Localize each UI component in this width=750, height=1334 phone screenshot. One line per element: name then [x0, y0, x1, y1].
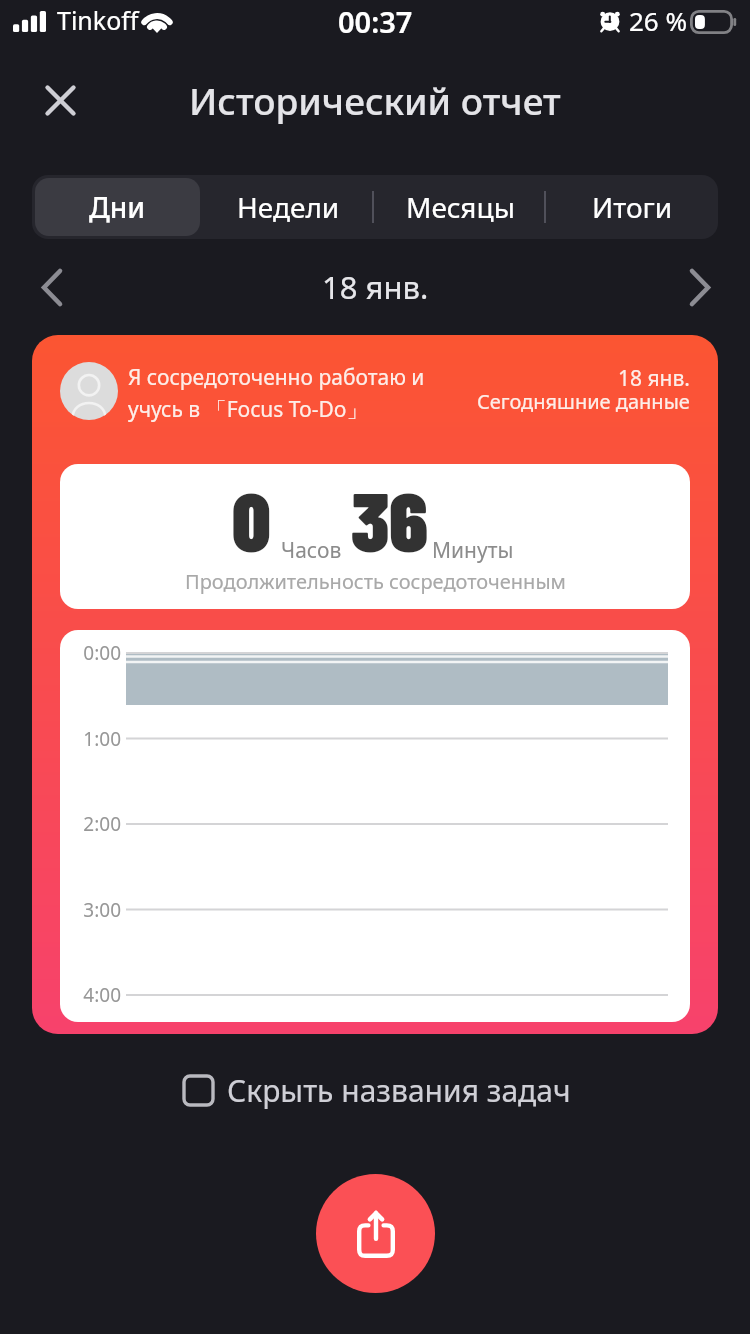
button[interactable]: Недели	[206, 178, 371, 236]
staticText: 3:00	[60, 897, 121, 923]
button[interactable]: Previous day	[20, 255, 84, 319]
staticText: 26 %	[629, 3, 688, 38]
staticText: 18 янв.	[322, 266, 429, 308]
staticText: 0	[232, 468, 271, 569]
staticText: Часов	[281, 536, 342, 565]
staticText: 36	[351, 468, 428, 569]
staticText: Скрыть названия задач	[227, 1070, 571, 1111]
button[interactable]: Итоги	[549, 178, 715, 236]
staticText: Tinkoff	[57, 3, 139, 37]
button[interactable]: Next day	[668, 255, 732, 319]
staticText: 00:37	[338, 2, 413, 41]
staticText: Дни	[89, 188, 146, 226]
button[interactable]: Скрыть названия задач	[182, 1070, 571, 1111]
staticText: Продолжительность сосредоточенным	[185, 568, 566, 595]
staticText: 2:00	[60, 811, 121, 837]
staticText: 1:00	[60, 726, 121, 752]
staticText: Минуты	[432, 536, 514, 565]
button[interactable]: Share	[316, 1174, 435, 1293]
staticText: Я сосредоточенно работаю и	[128, 363, 425, 392]
staticText: Месяцы	[406, 188, 515, 226]
staticText: Недели	[237, 188, 340, 226]
staticText: учусь в 「Focus To-Do」	[128, 395, 368, 424]
staticText: 4:00	[60, 982, 121, 1008]
staticText: Итоги	[592, 188, 673, 226]
button[interactable]: Месяцы	[377, 178, 543, 236]
button[interactable]: Дни	[35, 178, 200, 236]
staticText: Исторический отчет	[189, 75, 561, 125]
button[interactable]: Close	[26, 66, 95, 135]
staticText: 0:00	[60, 640, 121, 666]
staticText: 18 янв.	[618, 364, 690, 393]
staticText: Сегодняшние данные	[477, 388, 690, 415]
